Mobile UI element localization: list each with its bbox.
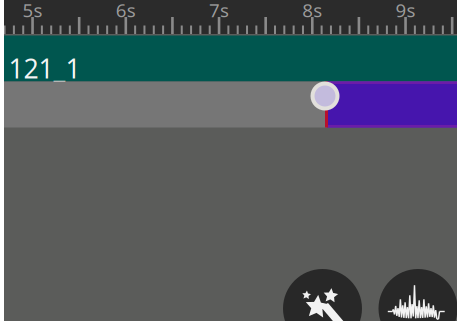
staticText: 5s [22, 0, 42, 22]
staticText: 6s [116, 0, 136, 22]
staticText: 8s [302, 0, 322, 22]
button[interactable]: Audio [378, 269, 457, 321]
staticText: 7s [209, 0, 229, 22]
staticText: 121_1 [8, 50, 80, 86]
staticText: 9s [396, 0, 416, 22]
button[interactable]: Effects [283, 269, 362, 321]
